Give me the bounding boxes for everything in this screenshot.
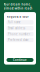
staticText: Email address — [8, 26, 25, 30]
staticText: almost within reach — [4, 7, 33, 10]
staticText: Your dream home, — [4, 3, 32, 6]
staticText: Phone number — [8, 32, 30, 36]
staticText: Continue — [13, 58, 27, 62]
staticText: Preferred date — [8, 38, 29, 42]
staticText: Full name — [8, 21, 21, 24]
staticText: Request a tour — [6, 15, 28, 18]
button[interactable]: Continue — [6, 58, 33, 62]
